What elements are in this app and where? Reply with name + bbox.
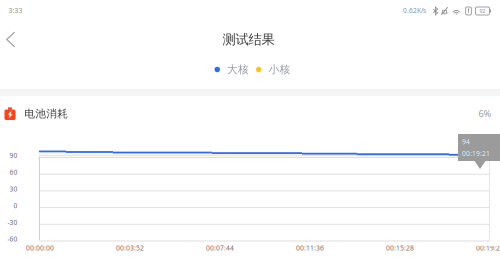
staticText: 90 <box>9 151 17 160</box>
button[interactable]: Back <box>0 25 24 55</box>
staticText: 测试结果 <box>223 31 275 48</box>
staticText: 小核 <box>268 63 290 76</box>
staticText: -30 <box>7 218 17 227</box>
staticText: 3:33 <box>9 6 23 15</box>
staticText: 00:19:21 <box>476 244 500 252</box>
staticText: 00:19:21 <box>462 149 490 158</box>
staticText: 大核 <box>227 63 249 76</box>
staticText: -60 <box>7 235 17 243</box>
staticText: 30 <box>9 184 17 193</box>
staticText: 00:07:44 <box>206 244 234 252</box>
staticText: 00:15:28 <box>386 244 414 252</box>
staticText: 00:03:52 <box>116 244 144 252</box>
staticText: 0 <box>13 201 17 210</box>
staticText: 00:11:36 <box>296 244 324 252</box>
staticText: 94 <box>462 137 470 146</box>
staticText: 00:00:00 <box>26 244 54 252</box>
staticText: 0.62K/s <box>403 6 426 15</box>
staticText: 电池消耗 <box>24 107 68 120</box>
staticText: 60 <box>9 168 17 177</box>
staticText: 6% <box>478 107 491 119</box>
staticText: 92 <box>479 7 485 15</box>
